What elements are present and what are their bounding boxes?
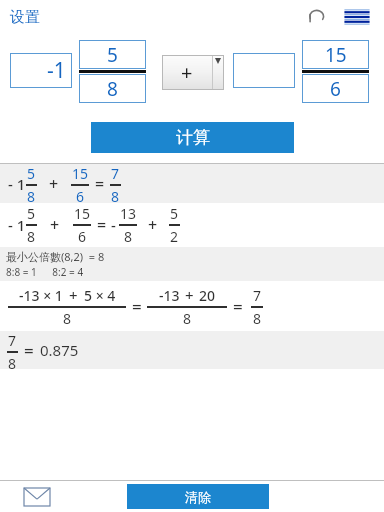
staticText: 8 [27, 187, 36, 203]
staticText: - 1 [8, 215, 26, 235]
staticText: 7 [253, 286, 262, 305]
staticText: 13 [120, 204, 137, 223]
staticText: 15 [72, 164, 89, 183]
staticText: + [148, 214, 158, 236]
button[interactable]: 设置 [0, 4, 48, 31]
staticText: 8 [8, 354, 17, 369]
staticText: 6 [330, 76, 341, 102]
button[interactable] [233, 53, 295, 88]
button[interactable]: 最小公倍數(8,2) = 8 [0, 247, 384, 281]
staticText: = [95, 173, 105, 195]
staticText: - 1 [8, 174, 26, 194]
staticText: 15 [74, 204, 91, 223]
staticText: 5 [107, 42, 118, 68]
button[interactable]: 7 [0, 331, 384, 369]
staticText: = [24, 339, 34, 362]
staticText: 7 [8, 331, 17, 350]
staticText: = [233, 295, 243, 318]
staticText: 8 [27, 227, 36, 246]
staticText: 2 [170, 227, 179, 246]
staticText: 15 [325, 42, 347, 68]
staticText: -13 × 1 [19, 286, 63, 305]
button[interactable]: 6 [302, 74, 369, 103]
button[interactable]: - 1 [0, 203, 384, 247]
button[interactable]: 5 [79, 40, 146, 69]
button[interactable]: Menu [340, 0, 374, 34]
button[interactable]: + [162, 55, 224, 90]
staticText: -1 [47, 56, 66, 85]
staticText: 5 × 4 [84, 286, 116, 305]
button[interactable]: 8 [79, 74, 146, 103]
staticText: 最小公倍數(8,2) = 8 [6, 249, 105, 264]
staticText: + [49, 173, 59, 195]
staticText: 设置 [10, 8, 40, 27]
button[interactable]: - 1 [0, 164, 384, 203]
staticText: + [50, 214, 60, 236]
staticText: 6 [76, 187, 85, 203]
staticText: + [181, 59, 193, 86]
staticText: 7 [111, 164, 120, 183]
staticText: 计算 [176, 127, 210, 148]
staticText: 8:8 = 1 8:2 = 4 [6, 265, 84, 279]
staticText: 5 [170, 204, 179, 223]
button[interactable]: Email [22, 486, 52, 508]
staticText: 0.875 [40, 340, 79, 360]
staticText: = [132, 295, 142, 318]
staticText: -13 [159, 286, 180, 305]
staticText: 5 [27, 164, 36, 183]
staticText: = [97, 214, 107, 236]
button[interactable]: Undo [302, 2, 332, 32]
staticText: 8 [124, 227, 133, 246]
button[interactable]: 15 [302, 40, 369, 69]
staticText: 5 [27, 204, 36, 223]
staticText: 清除 [185, 489, 211, 505]
staticText: 6 [78, 227, 87, 246]
staticText: + [69, 285, 78, 305]
button[interactable]: 清除 [127, 484, 269, 509]
button[interactable]: -13 × 1 [0, 281, 384, 331]
staticText: - [111, 215, 116, 235]
button[interactable]: 计算 [91, 122, 294, 153]
staticText: 8 [63, 309, 72, 328]
button[interactable]: -1 [10, 53, 72, 88]
staticText: 20 [199, 286, 216, 305]
staticText: + [185, 285, 194, 305]
staticText: 8 [183, 309, 192, 328]
staticText: 8 [253, 309, 262, 328]
staticText: 8 [107, 76, 118, 102]
staticText: 8 [111, 187, 120, 203]
